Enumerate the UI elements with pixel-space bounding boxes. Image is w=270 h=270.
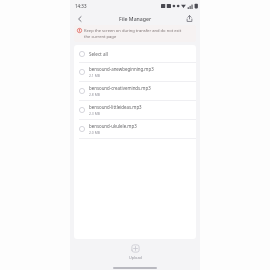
- staticText: bensound-ukulele.mp3: [89, 123, 137, 129]
- staticText: 14:33: [75, 3, 87, 9]
- button[interactable]: bensound-creativeminds.mp3: [74, 82, 196, 100]
- staticText: bensound-anewbeginning.mp3: [89, 66, 154, 72]
- button[interactable]: bensound-anewbeginning.mp3: [74, 63, 196, 81]
- staticText: 2.3 MB: [89, 111, 100, 116]
- staticText: Select all: [89, 51, 108, 57]
- staticText: 2.1 MB: [89, 73, 100, 78]
- button[interactable]: bensound-littleideas.mp3: [74, 101, 196, 119]
- staticText: bensound-creativeminds.mp3: [89, 85, 151, 91]
- button[interactable]: Select all: [74, 45, 196, 62]
- staticText: Keep the screen on during transfer and d…: [84, 28, 182, 39]
- button[interactable]: Back: [74, 13, 85, 24]
- button[interactable]: bensound-ukulele.mp3: [74, 120, 196, 138]
- staticText: 2.8 MB: [89, 92, 100, 97]
- button[interactable]: Upload: [126, 242, 145, 262]
- staticText: 2.0 MB: [89, 130, 100, 135]
- staticText: File Manager: [119, 15, 152, 22]
- button[interactable]: Share: [184, 13, 195, 24]
- staticText: Upload: [129, 255, 142, 260]
- staticText: bensound-littleideas.mp3: [89, 104, 142, 110]
